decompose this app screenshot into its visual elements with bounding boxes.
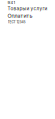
staticText: Оплатить xyxy=(7,12,32,19)
staticText: 9:41 xyxy=(7,0,15,5)
staticText: ТЕСТ 12345 xyxy=(7,20,25,24)
staticText: Товары и услуги xyxy=(7,6,47,11)
